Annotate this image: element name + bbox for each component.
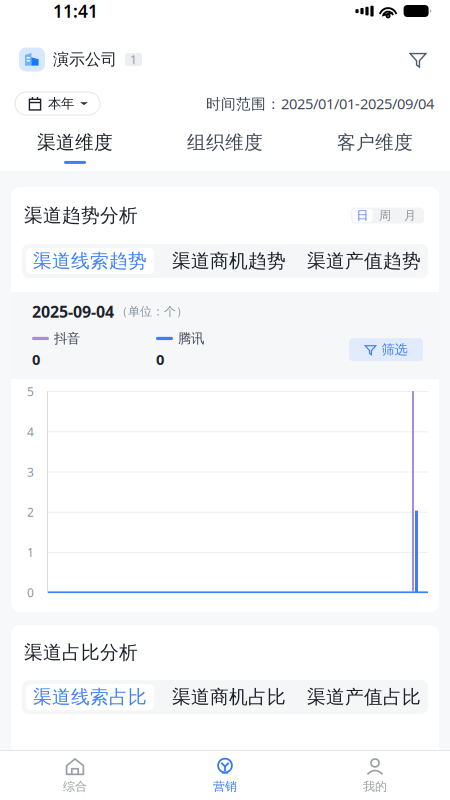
- staticText: 筛选: [381, 341, 407, 358]
- button[interactable]: 筛选: [349, 338, 423, 361]
- staticText: 2025-09-04: [32, 301, 114, 322]
- staticText: 5: [27, 384, 34, 399]
- staticText: 渠道线索趋势: [33, 249, 147, 272]
- button[interactable]: 日: [352, 209, 372, 222]
- staticText: 组织维度: [187, 131, 263, 154]
- button[interactable]: 渠道维度: [0, 120, 150, 171]
- button[interactable]: 综合: [0, 750, 150, 800]
- button[interactable]: 营销: [150, 750, 300, 800]
- button[interactable]: 我的: [300, 750, 450, 800]
- button[interactable]: 周: [372, 209, 397, 222]
- staticText: 2: [27, 504, 34, 520]
- staticText: 3: [27, 464, 34, 480]
- button[interactable]: 客户维度: [300, 120, 450, 171]
- staticText: 抖音: [54, 330, 80, 347]
- button[interactable]: 筛选: [403, 44, 433, 74]
- button[interactable]: 渠道线索趋势: [26, 248, 154, 274]
- staticText: 腾讯: [178, 330, 204, 347]
- staticText: 1: [27, 544, 34, 560]
- staticText: 渠道占比分析: [24, 641, 138, 664]
- staticText: 时间范围：2025/01/01-2025/09/04: [206, 94, 434, 113]
- button[interactable]: 渠道线索占比: [26, 684, 154, 710]
- staticText: 11:41: [53, 0, 98, 22]
- staticText: 周: [379, 208, 391, 223]
- staticText: 1: [130, 51, 137, 67]
- staticText: 4: [27, 424, 34, 440]
- staticText: 渠道维度: [37, 131, 113, 154]
- staticText: 演示公司: [53, 50, 117, 69]
- button[interactable]: 本年: [15, 92, 100, 115]
- button[interactable]: 渠道商机占比: [169, 684, 289, 710]
- staticText: 渠道商机占比: [172, 686, 286, 708]
- button[interactable]: 演示公司: [19, 47, 142, 71]
- button[interactable]: 渠道商机趋势: [169, 248, 289, 274]
- staticText: 渠道产值占比: [307, 686, 421, 708]
- staticText: 渠道商机趋势: [172, 249, 286, 272]
- staticText: 渠道产值趋势: [307, 249, 421, 272]
- staticText: 营销: [213, 779, 237, 794]
- staticText: 0: [27, 585, 34, 600]
- button[interactable]: 渠道产值趋势: [304, 248, 424, 274]
- staticText: 渠道线索占比: [33, 686, 147, 708]
- staticText: 0: [32, 350, 40, 369]
- button[interactable]: 月: [397, 209, 422, 222]
- staticText: 本年: [48, 95, 74, 112]
- staticText: 客户维度: [337, 131, 413, 154]
- staticText: 我的: [363, 779, 387, 794]
- button[interactable]: 渠道产值占比: [304, 684, 424, 710]
- button[interactable]: 组织维度: [150, 120, 300, 171]
- staticText: 0: [156, 350, 164, 369]
- staticText: 日: [356, 208, 368, 223]
- staticText: 月: [404, 208, 416, 223]
- staticText: （单位：个）: [116, 304, 188, 319]
- staticText: 综合: [63, 779, 87, 794]
- staticText: 渠道趋势分析: [24, 204, 138, 227]
